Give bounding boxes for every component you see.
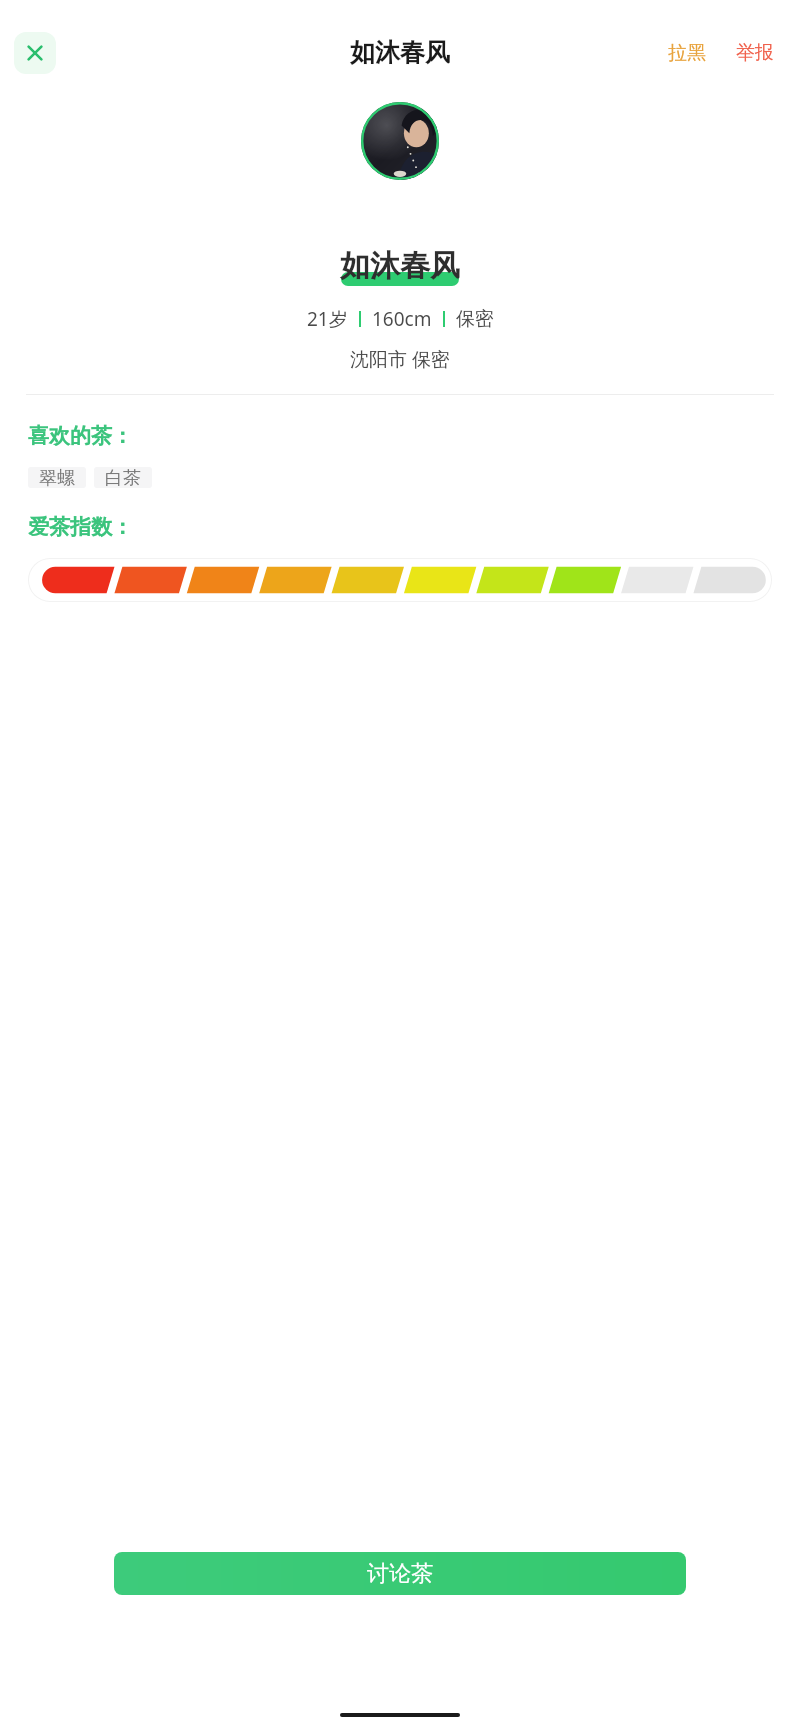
button[interactable]: 举报 <box>730 37 780 69</box>
button[interactable]: 白茶 <box>94 467 152 488</box>
button[interactable]: 翠螺 <box>28 467 86 488</box>
staticText: 保密 <box>456 307 494 331</box>
staticText: 翠螺 <box>39 467 75 488</box>
staticText: 160cm <box>372 306 432 332</box>
staticText: 白茶 <box>105 467 141 488</box>
staticText: 举报 <box>736 41 774 65</box>
staticText: 讨论茶 <box>367 1560 433 1588</box>
staticText: 拉黑 <box>668 41 706 65</box>
staticText: 爱茶指数： <box>28 514 133 540</box>
button[interactable]: 拉黑 <box>662 37 712 69</box>
button[interactable]: 讨论茶 <box>114 1552 686 1595</box>
staticText: 如沐春风 <box>350 37 450 68</box>
button[interactable]: Close <box>14 32 56 74</box>
staticText: 21岁 <box>307 306 348 332</box>
staticText: 喜欢的茶： <box>28 423 133 449</box>
staticText: 沈阳市 保密 <box>350 346 450 372</box>
staticText: 如沐春风 <box>340 247 460 285</box>
